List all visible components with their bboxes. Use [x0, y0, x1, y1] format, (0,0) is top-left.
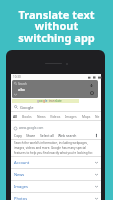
button[interactable]: Images: [14, 181, 98, 192]
button[interactable]: Videos: [50, 114, 61, 118]
staticText: Web search: [58, 133, 77, 138]
button[interactable]: Copy: [14, 133, 22, 138]
staticText: www.google.com: [19, 126, 44, 130]
staticText: Copy: [14, 133, 22, 138]
button[interactable]: More options: [94, 133, 99, 138]
button[interactable]: Microphone: [89, 83, 94, 88]
staticText: Account: [14, 160, 30, 165]
button[interactable]: Maps: [82, 114, 91, 118]
button[interactable]: News: [14, 169, 98, 180]
staticText: abc: [18, 87, 25, 92]
staticText: Select all: [40, 133, 54, 138]
staticText: Share: [26, 133, 36, 138]
staticText: g: [37, 99, 39, 103]
staticText: Google: [20, 105, 34, 110]
staticText: Ne: [95, 114, 100, 118]
staticText: Books: [22, 114, 32, 118]
button[interactable]: Ne: [95, 114, 100, 118]
staticText: tran: [48, 99, 55, 103]
button[interactable]: Share: [26, 133, 36, 138]
staticText: News: [14, 172, 25, 177]
staticText: News: [37, 114, 46, 118]
button[interactable]: All: [13, 114, 18, 118]
button[interactable]: Photos: [14, 193, 98, 200]
staticText: All: [13, 114, 18, 118]
staticText: Search the world's information, includin…: [14, 141, 98, 155]
staticText: slate: [55, 99, 62, 103]
staticText: Images: [14, 184, 28, 189]
staticText: Translate text without switching app: [0, 7, 113, 45]
staticText: Videos: [50, 114, 61, 118]
staticText: oo: [39, 99, 43, 103]
button[interactable]: Web search: [58, 133, 77, 138]
staticText: Search: [18, 82, 27, 86]
staticText: Maps: [82, 114, 91, 118]
staticText: g: [43, 99, 45, 103]
staticText: Images: [65, 114, 77, 118]
button[interactable]: Select all: [40, 133, 54, 138]
button[interactable]: Camera: [89, 90, 94, 95]
button[interactable]: Images: [65, 114, 77, 118]
button[interactable]: News: [37, 114, 46, 118]
button[interactable]: Account: [14, 157, 98, 168]
staticText: 10:30: [13, 75, 21, 79]
button[interactable]: Books: [22, 114, 32, 118]
staticText: Photos: [14, 196, 28, 200]
button[interactable]: Search: [12, 80, 98, 98]
staticText: le: [45, 99, 48, 103]
